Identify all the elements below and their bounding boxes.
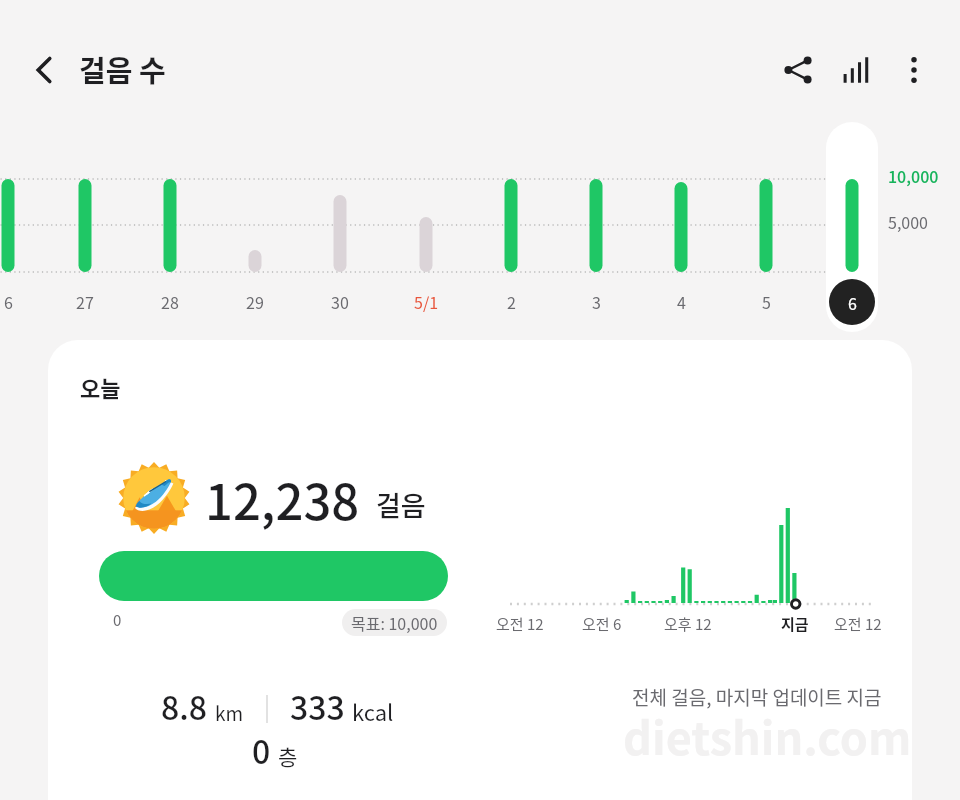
- button[interactable]: More options: [885, 41, 943, 99]
- button[interactable]: Statistics: [827, 41, 885, 99]
- button[interactable]: 5: [736, 283, 796, 319]
- staticText: 28: [161, 290, 179, 313]
- staticText: kcal: [352, 695, 394, 727]
- staticText: 3: [592, 290, 601, 313]
- staticText: 12,238: [205, 463, 360, 534]
- staticText: 오늘: [80, 371, 121, 403]
- staticText: 0: [113, 609, 122, 631]
- staticText: 6: [4, 290, 13, 313]
- staticText: 333: [290, 683, 345, 729]
- button[interactable]: 5/1: [396, 283, 456, 319]
- staticText: 5/1: [414, 290, 439, 313]
- staticText: 지금: [781, 613, 809, 635]
- staticText: 4: [677, 290, 686, 313]
- button[interactable]: 6: [0, 283, 38, 319]
- staticText: 오전 6: [582, 613, 622, 635]
- staticText: 5: [762, 290, 771, 313]
- staticText: 걸음 수: [79, 48, 166, 90]
- staticText: 오전 12: [834, 613, 882, 635]
- button[interactable]: 3: [566, 283, 626, 319]
- button[interactable]: 27: [55, 283, 115, 319]
- button[interactable]: 2: [481, 283, 541, 319]
- button[interactable]: 걸음 수: [79, 40, 199, 98]
- staticText: 6: [848, 291, 857, 314]
- staticText: 29: [246, 290, 264, 313]
- button[interactable]: Share: [769, 41, 827, 99]
- button[interactable]: Back: [16, 41, 74, 99]
- button[interactable]: 4: [651, 283, 711, 319]
- staticText: 전체 걸음, 마지막 업데이트 지금: [632, 683, 882, 711]
- staticText: dietshin.com: [623, 703, 912, 768]
- staticText: 걸음: [376, 485, 426, 524]
- button[interactable]: 6: [829, 279, 875, 325]
- staticText: 층: [278, 741, 298, 771]
- staticText: 30: [331, 290, 349, 313]
- staticText: 오후 12: [664, 613, 712, 635]
- staticText: 오전 12: [496, 613, 544, 635]
- staticText: 8.8: [161, 683, 208, 729]
- staticText: 2: [507, 290, 516, 313]
- staticText: 0: [252, 727, 271, 773]
- button[interactable]: 30: [310, 283, 370, 319]
- button[interactable]: 28: [140, 283, 200, 319]
- staticText: km: [215, 699, 244, 727]
- button[interactable]: 29: [225, 283, 285, 319]
- staticText: 5,000: [888, 210, 928, 233]
- staticText: 목표: 10,000: [351, 611, 438, 634]
- staticText: 27: [76, 290, 94, 313]
- staticText: 10,000: [888, 164, 939, 187]
- button[interactable]: 오늘: [48, 340, 912, 800]
